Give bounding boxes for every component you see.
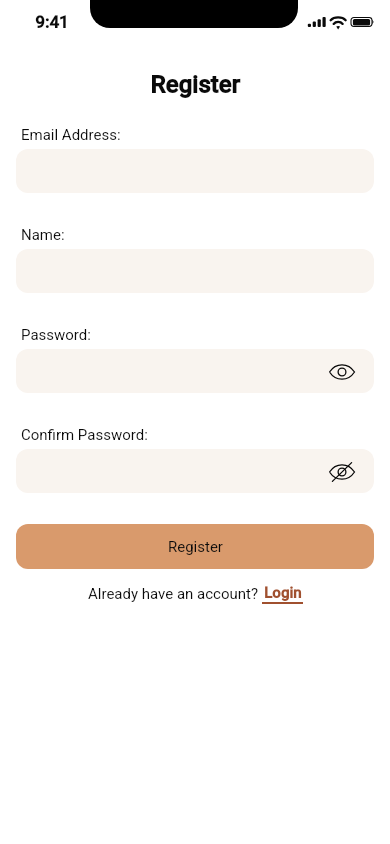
staticText: Password: [21,326,91,344]
button[interactable]: Register [16,524,374,569]
staticText: Login [264,584,302,602]
staticText: Confirm Password: [21,426,148,444]
staticText: Register [0,71,390,99]
staticText: Name: [21,226,65,244]
staticText: Email Address: [21,126,121,144]
button[interactable]: Show password [325,354,359,388]
staticText: Register [168,538,223,556]
staticText: Already have an account? [88,585,262,603]
button[interactable]: Login [262,584,303,604]
button[interactable]: Hide password [325,454,359,488]
staticText: 9:41 [35,12,69,32]
button[interactable]: Show password [16,349,374,393]
button[interactable]: Hide password [16,449,374,493]
